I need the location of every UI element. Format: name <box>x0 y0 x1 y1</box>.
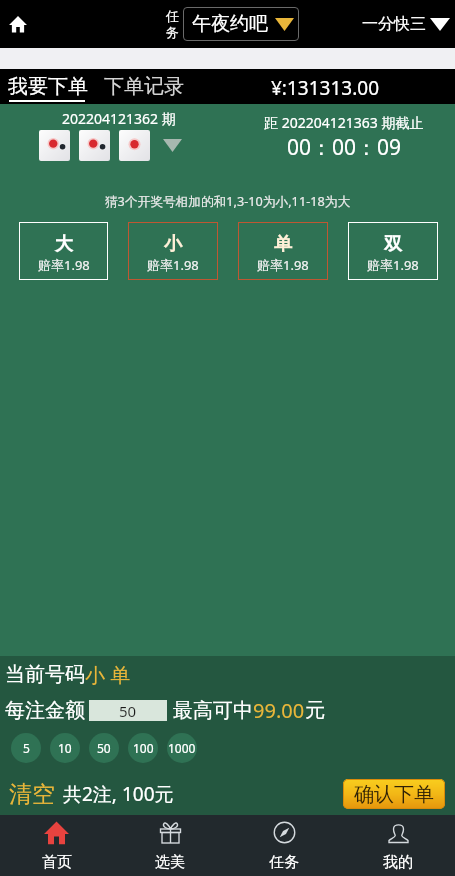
button[interactable]: 我要下单 <box>4 69 94 104</box>
button[interactable]: 50 <box>89 733 119 763</box>
button[interactable]: 选美 <box>113 815 227 876</box>
staticText: 10 <box>58 740 72 756</box>
staticText: 100 <box>133 740 154 756</box>
staticText: 午夜约吧 <box>192 12 268 36</box>
staticText: 我要下单 <box>8 74 88 99</box>
button[interactable]: 午夜约吧 <box>183 7 299 41</box>
staticText: 我的 <box>383 853 413 872</box>
staticText: 务 <box>166 24 179 40</box>
staticText: 距 202204121363 期截止 <box>264 113 424 132</box>
staticText: 大 <box>55 233 73 256</box>
staticText: 首页 <box>42 853 72 872</box>
button[interactable]: 10 <box>50 733 80 763</box>
button[interactable]: 1000 <box>167 733 197 763</box>
staticText: 5 <box>23 740 30 756</box>
button[interactable]: 单 <box>238 222 328 280</box>
staticText: 小 单 <box>85 661 131 688</box>
staticText: 202204121362 期 <box>62 109 176 128</box>
staticText: 一分快三 <box>362 14 426 34</box>
button[interactable]: Home <box>0 6 36 42</box>
staticText: 确认下单 <box>354 782 434 807</box>
button[interactable]: 我的 <box>341 815 455 876</box>
button[interactable]: 5 <box>11 733 41 763</box>
staticText: 50 <box>97 740 111 756</box>
button[interactable]: 任务 <box>227 815 341 876</box>
button[interactable]: 确认下单 <box>343 779 445 809</box>
staticText: 单 <box>274 233 292 256</box>
button[interactable]: 首页 <box>0 815 113 876</box>
button[interactable]: 小 <box>128 222 218 280</box>
staticText: 赔率1.98 <box>367 256 419 274</box>
staticText: 1000 <box>168 740 196 756</box>
button[interactable]: 下单记录 <box>104 74 184 99</box>
button[interactable]: 50 <box>89 700 167 721</box>
staticText: 猜3个开奖号相加的和1,3-10为小,11-18为大 <box>0 192 455 209</box>
staticText: 元 <box>305 698 325 723</box>
staticText: 50 <box>119 701 137 721</box>
staticText: 赔率1.98 <box>38 256 90 274</box>
staticText: 小 <box>164 233 182 256</box>
staticText: 最高可中 <box>173 698 253 723</box>
staticText: 任务 <box>269 853 299 872</box>
staticText: 赔率1.98 <box>147 256 199 274</box>
staticText: 99.00 <box>253 697 305 724</box>
button[interactable]: 双 <box>348 222 438 280</box>
staticText: 双 <box>384 233 402 256</box>
staticText: 共2注, 100元 <box>63 781 174 807</box>
staticText: 任 <box>166 8 179 24</box>
button[interactable]: 清空 <box>9 780 55 809</box>
staticText: 当前号码 <box>5 662 85 687</box>
button[interactable]: 100 <box>128 733 158 763</box>
staticText: ¥:131313.00 <box>271 75 379 101</box>
button[interactable]: 一分快三 <box>362 14 450 34</box>
staticText: 00：00：09 <box>287 133 402 162</box>
button[interactable]: 大 <box>19 222 108 280</box>
staticText: 赔率1.98 <box>257 256 309 274</box>
staticText: 每注金额 <box>5 698 85 723</box>
staticText: 选美 <box>155 853 185 872</box>
